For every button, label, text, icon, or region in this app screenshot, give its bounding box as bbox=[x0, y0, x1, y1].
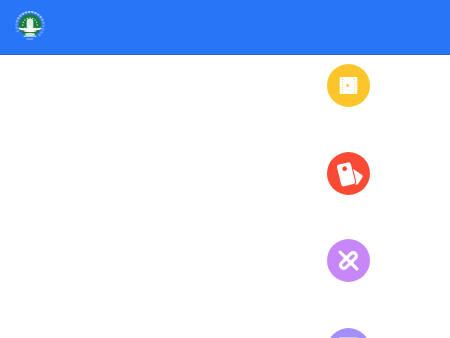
button[interactable]: Deals bbox=[327, 152, 370, 195]
button[interactable]: App logo bbox=[14, 11, 46, 43]
button[interactable]: Video bbox=[327, 64, 370, 107]
button[interactable]: Link bbox=[327, 239, 370, 282]
button[interactable]: Documents bbox=[327, 328, 370, 338]
